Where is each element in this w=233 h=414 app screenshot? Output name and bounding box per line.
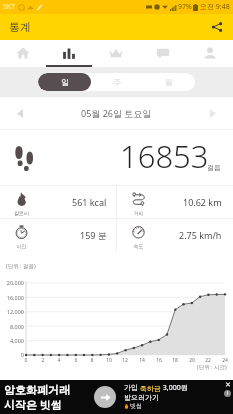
staticText: 받으러가기 [124, 393, 159, 402]
button[interactable]: Statistics [46, 40, 92, 67]
staticText: i [227, 390, 229, 397]
staticText: 암호화폐거래 [4, 383, 70, 397]
staticText: 2 [36, 357, 50, 364]
staticText: 16,000 [0, 294, 24, 301]
button[interactable]: Previous day [0, 97, 40, 129]
staticText: 일 [61, 77, 69, 87]
staticText: (단위 : 걸음) [6, 262, 36, 270]
staticText: 시간 [8, 243, 35, 249]
staticText: 칼로리 [8, 210, 35, 216]
staticText: 주 [113, 77, 121, 87]
button[interactable]: 암호화폐거래 [0, 380, 233, 414]
staticText: 오전 9:48 [200, 2, 230, 12]
staticText: 12,000 [0, 308, 24, 315]
button[interactable]: Chat [139, 40, 186, 67]
staticText: 거리 [125, 210, 152, 216]
button[interactable]: 주 [91, 73, 143, 91]
staticText: 4 [52, 357, 66, 364]
staticText: 159 분 [80, 229, 107, 241]
button[interactable]: 거리 [117, 186, 233, 218]
button[interactable]: Next day [193, 97, 233, 129]
staticText: 24 [218, 357, 232, 364]
staticText: 통계 [9, 20, 31, 34]
staticText: 빗썸 [130, 402, 142, 410]
staticText: 561 kcal [72, 196, 107, 208]
staticText: 8,000 [0, 323, 24, 330]
staticText: ✕ [225, 381, 231, 389]
staticText: 8 [85, 357, 99, 364]
staticText: 10 [102, 357, 116, 364]
staticText: 4,000 [0, 337, 24, 344]
staticText: 20,000 [0, 279, 24, 286]
button[interactable]: Home [0, 40, 46, 67]
staticText: 12 [118, 357, 132, 364]
staticText: 3,000원 [161, 383, 188, 393]
button[interactable]: 일 [38, 73, 91, 91]
button[interactable]: 속도 [117, 219, 233, 251]
staticText: 14 [135, 357, 149, 364]
staticText: 10.62 km [183, 196, 222, 208]
button[interactable]: 시간 [0, 219, 116, 251]
staticText: 05월 26일 토요일 [81, 107, 152, 119]
staticText: SKT [3, 2, 16, 12]
staticText: 속도 [125, 243, 152, 249]
button[interactable]: 월 [143, 73, 195, 91]
staticText: (단위 : 시간) [197, 363, 227, 371]
staticText: 20 [185, 357, 199, 364]
staticText: 가입 [124, 383, 140, 393]
button[interactable]: Ranking [92, 40, 139, 67]
staticText: 축하금 [140, 384, 161, 393]
button[interactable]: Share [206, 16, 228, 38]
staticText: 월 [165, 77, 173, 87]
button[interactable]: Profile [186, 40, 233, 67]
staticText: 걸음 [207, 163, 221, 172]
staticText: 6 [69, 357, 83, 364]
staticText: 18 [168, 357, 182, 364]
staticText: 16853 [120, 135, 209, 177]
button[interactable]: 칼로리 [0, 186, 116, 218]
staticText: 시작은 빗썸 [4, 397, 62, 412]
staticText: 16 [152, 357, 166, 364]
staticText: 22 [201, 357, 215, 364]
staticText: 0 [0, 351, 24, 358]
staticText: 97% [178, 2, 192, 12]
staticText: 0 [19, 357, 33, 364]
staticText: 2.75 km/h [179, 229, 222, 241]
